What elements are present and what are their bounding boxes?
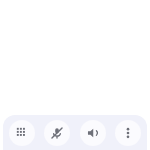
button[interactable]: Dialpad [9,120,35,146]
button[interactable]: More options [115,120,141,146]
button[interactable]: Speaker [80,120,106,146]
button[interactable]: Unmute microphone [44,120,70,146]
